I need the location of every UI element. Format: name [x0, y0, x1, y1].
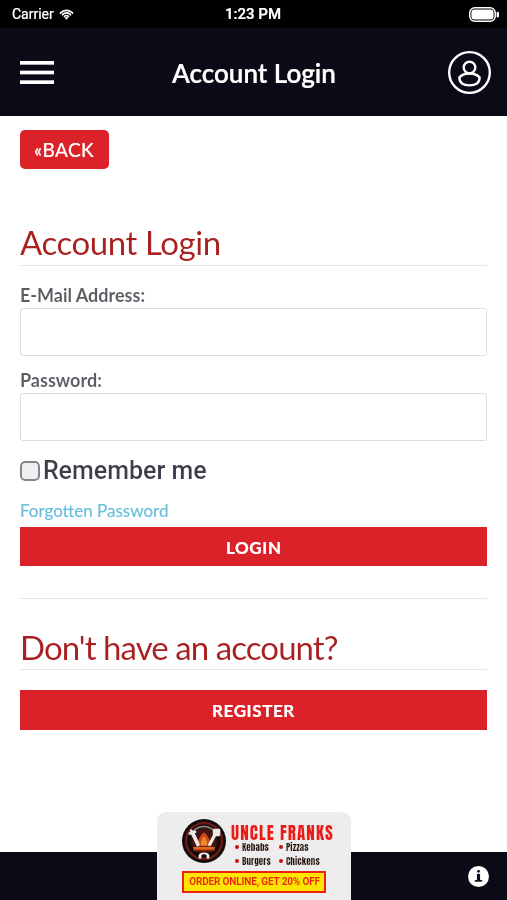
button[interactable]: LOGIN — [20, 527, 487, 566]
button[interactable]: Ad information — [463, 861, 493, 891]
button[interactable]: UNCLE FRANKS — [157, 812, 351, 900]
staticText: Carrier — [12, 6, 54, 22]
staticText: «BACK — [34, 138, 95, 161]
staticText: Kebabs — [242, 840, 269, 854]
staticText: Account Login — [172, 57, 336, 88]
button[interactable]: ORDER ONLINE, GET 20% OFF — [184, 873, 324, 891]
staticText: LOGIN — [226, 537, 282, 557]
staticText: Burgers — [242, 854, 271, 868]
staticText: Remember me — [43, 456, 207, 485]
button[interactable] — [20, 308, 487, 356]
button[interactable]: Menu — [8, 43, 66, 101]
button[interactable]: Account — [441, 44, 497, 100]
staticText: REGISTER — [212, 700, 295, 720]
button[interactable]: «BACK — [20, 130, 109, 169]
staticText: Account Login — [20, 222, 221, 262]
button[interactable]: Remember me — [20, 456, 207, 485]
button[interactable]: Forgotten Password — [20, 500, 169, 520]
staticText: Pizzas — [286, 840, 309, 854]
button[interactable] — [20, 393, 487, 441]
button[interactable]: REGISTER — [20, 690, 487, 730]
staticText: E-Mail Address: — [20, 284, 146, 306]
staticText: Chickens — [286, 854, 320, 868]
staticText: Don't have an account? — [20, 627, 338, 667]
staticText: UNCLE FRANKS — [231, 820, 334, 846]
staticText: ORDER ONLINE, GET 20% OFF — [189, 876, 320, 888]
staticText: 1:23 PM — [225, 5, 282, 23]
staticText: Password: — [20, 369, 102, 391]
